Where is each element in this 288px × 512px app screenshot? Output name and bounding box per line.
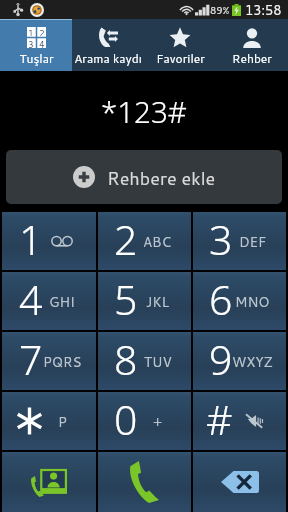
button[interactable]: P: [2, 392, 96, 450]
staticText: 2: [39, 27, 45, 36]
button[interactable]: 8: [98, 332, 191, 390]
button[interactable]: 1: [0, 19, 72, 71]
staticText: Tuşlar: [19, 50, 54, 67]
staticText: 6: [209, 271, 233, 327]
staticText: MNO: [235, 292, 270, 311]
staticText: 2: [114, 211, 138, 267]
staticText: *123#: [101, 91, 187, 131]
button[interactable]: 3: [193, 212, 286, 270]
staticText: TUV: [144, 352, 172, 371]
staticText: JKL: [146, 292, 170, 311]
button[interactable]: 1: [2, 212, 96, 270]
staticText: DEF: [239, 232, 267, 251]
staticText: 4: [39, 38, 45, 48]
staticText: 3: [28, 38, 34, 48]
button[interactable]: #: [193, 392, 286, 450]
button[interactable]: Rehber: [216, 19, 288, 71]
staticText: 13:58: [245, 1, 282, 19]
staticText: +: [153, 412, 163, 431]
staticText: 7: [19, 331, 43, 387]
button[interactable]: Call: [98, 452, 191, 512]
button[interactable]: 4: [2, 272, 96, 330]
staticText: Favoriler: [156, 50, 205, 67]
staticText: WXYZ: [232, 352, 273, 371]
staticText: 89%: [210, 3, 230, 17]
button[interactable]: 5: [98, 272, 191, 330]
staticText: 1: [19, 211, 43, 267]
button[interactable]: 0: [98, 392, 191, 450]
staticText: Arama kaydı: [74, 50, 142, 67]
staticText: 1: [28, 27, 34, 36]
button[interactable]: 9: [193, 332, 286, 390]
staticText: 4: [19, 271, 43, 327]
button[interactable]: Add call to contact: [2, 452, 96, 512]
staticText: 5: [114, 271, 138, 327]
staticText: PQRS: [43, 352, 82, 371]
staticText: #: [206, 391, 233, 447]
staticText: 8: [114, 331, 138, 387]
staticText: Rehbere ekle: [107, 165, 216, 190]
staticText: P: [58, 412, 67, 431]
staticText: ABC: [143, 232, 172, 251]
button[interactable]: Arama kaydı: [72, 19, 144, 71]
staticText: 9: [209, 331, 233, 387]
staticText: GHI: [49, 292, 75, 311]
staticText: 0: [114, 391, 138, 447]
staticText: 3: [209, 211, 233, 267]
button[interactable]: Rehbere ekle: [6, 150, 282, 204]
button[interactable]: 7: [2, 332, 96, 390]
staticText: Rehber: [232, 50, 272, 67]
button[interactable]: Backspace: [193, 452, 286, 512]
button[interactable]: 2: [98, 212, 191, 270]
button[interactable]: Favoriler: [144, 19, 216, 71]
button[interactable]: 6: [193, 272, 286, 330]
